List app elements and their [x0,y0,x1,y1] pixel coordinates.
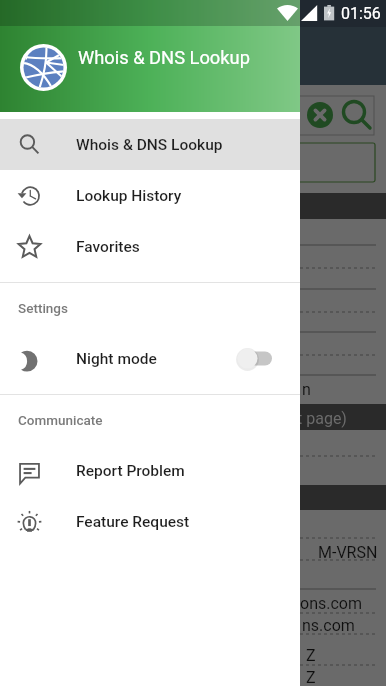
staticText: Lookup History [76,187,182,205]
staticText: 01:56 [341,4,381,23]
staticText: Feature Request [76,513,190,531]
staticText: ns.com [302,616,355,635]
staticText: Communicate [18,412,103,428]
button[interactable]: Lookup History [0,170,300,221]
button[interactable]: Feature Request [0,496,300,547]
staticText: Night mode [76,350,157,368]
staticText: Z [306,646,316,665]
staticText: n [302,380,311,399]
staticText: Settings [18,300,68,316]
button[interactable]: Report Problem [0,445,300,496]
staticText: Report Problem [76,462,185,480]
button[interactable]: Whois & DNS Lookup [0,119,300,170]
staticText: Whois & DNS Lookup [76,136,223,154]
staticText: Z [306,668,316,686]
staticText: t page) [297,409,347,428]
staticText: M-VRSN [318,543,378,562]
button[interactable]: Favorites [0,221,300,272]
button[interactable]: Night mode [0,333,300,384]
staticText: Whois & DNS Lookup [78,47,250,68]
staticText: Favorites [76,238,140,256]
staticText: ons.com [300,594,362,613]
